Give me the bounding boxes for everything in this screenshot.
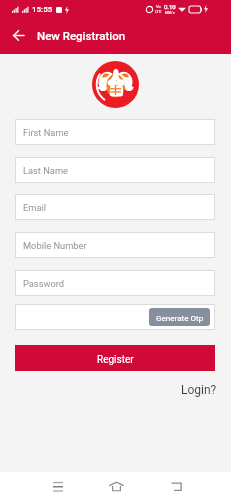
staticText: LTE bbox=[155, 9, 162, 14]
staticText: 15:55 bbox=[32, 5, 53, 14]
button[interactable]: Generate Otp bbox=[149, 308, 210, 326]
staticText: Login? bbox=[181, 383, 217, 397]
button[interactable]: Register bbox=[15, 345, 215, 371]
staticText: Generate Otp bbox=[156, 313, 204, 322]
button[interactable]: Home bbox=[101, 475, 131, 497]
button[interactable]: Recent apps bbox=[43, 475, 73, 497]
button[interactable]: Back bbox=[8, 25, 29, 46]
button[interactable]: First Name bbox=[15, 119, 215, 145]
staticText: Last Name bbox=[23, 165, 68, 176]
button[interactable]: Back bbox=[161, 475, 191, 497]
staticText: Vo bbox=[156, 4, 161, 9]
staticText: 0.10 bbox=[164, 3, 176, 10]
button[interactable]: Last Name bbox=[15, 157, 215, 183]
button[interactable]: Password bbox=[15, 270, 215, 296]
button[interactable]: Login? bbox=[181, 383, 217, 397]
staticText: Mobile Number bbox=[23, 240, 87, 251]
staticText: Password bbox=[23, 278, 65, 289]
staticText: Register bbox=[97, 354, 134, 366]
button[interactable]: Mobile Number bbox=[15, 232, 215, 258]
staticText: MB/s bbox=[165, 10, 175, 15]
staticText: New Registration bbox=[37, 29, 126, 42]
staticText: First Name bbox=[23, 127, 69, 138]
button[interactable]: Email bbox=[15, 194, 215, 220]
staticText: Email bbox=[23, 202, 47, 213]
